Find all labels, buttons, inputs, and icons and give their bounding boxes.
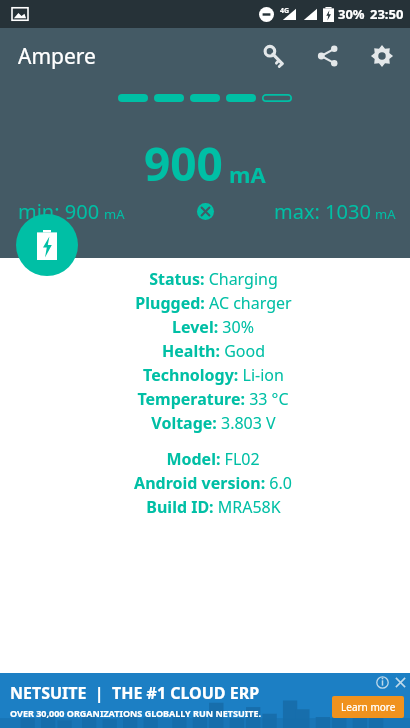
staticText: mA xyxy=(229,159,266,189)
button[interactable]: Temperature: 33 °C xyxy=(0,387,410,411)
staticText: 23:50 xyxy=(370,5,404,23)
button[interactable]: Voltage: 3.803 V xyxy=(0,411,410,435)
button[interactable]: NETSUITE | THE #1 CLOUD ERP xyxy=(0,673,410,728)
staticText: mA xyxy=(375,205,396,223)
button[interactable]: Level: 30% xyxy=(0,315,410,339)
button[interactable]: Close ad xyxy=(392,674,408,690)
staticText: Health: Good xyxy=(162,340,265,362)
staticText: Technology: Li-ion xyxy=(143,364,284,386)
button[interactable]: Status: Charging xyxy=(0,267,410,291)
button[interactable]: Ad information xyxy=(374,674,390,690)
staticText: Level: 30% xyxy=(172,316,254,338)
staticText: Build ID: MRA58K xyxy=(146,496,281,518)
button[interactable]: Model: FL02 xyxy=(0,447,410,471)
staticText: max: 1030 xyxy=(274,198,371,225)
button[interactable]: Health: Good xyxy=(0,339,410,363)
button[interactable]: Plugged: AC charger xyxy=(0,291,410,315)
button[interactable]: Share xyxy=(308,36,348,76)
staticText: Status: Charging xyxy=(149,268,278,290)
staticText: 4G xyxy=(280,6,290,16)
staticText: 900 xyxy=(144,132,223,195)
button[interactable]: Build ID: MRA58K xyxy=(0,495,410,519)
staticText: Plugged: AC charger xyxy=(135,292,292,314)
button[interactable]: Android version: 6.0 xyxy=(0,471,410,495)
button[interactable]: min: 900 xyxy=(18,198,125,225)
staticText: min: 900 xyxy=(18,198,100,225)
staticText: Android version: 6.0 xyxy=(134,472,292,494)
button[interactable]: Unlock pro version xyxy=(254,36,294,76)
staticText: mA xyxy=(104,205,125,223)
staticText: Temperature: 33 °C xyxy=(137,388,289,410)
staticText: NETSUITE | THE #1 CLOUD ERP xyxy=(10,682,260,704)
button[interactable]: Settings xyxy=(362,36,402,76)
button[interactable]: Learn more xyxy=(332,696,404,718)
button[interactable]: Battery charging details xyxy=(16,214,78,276)
staticText: Voltage: 3.803 V xyxy=(151,412,276,434)
button[interactable]: Reset min and max xyxy=(192,198,218,224)
staticText: Learn more xyxy=(341,700,396,714)
button[interactable]: max: 1030 xyxy=(274,198,396,225)
staticText: OVER 30,000 ORGANIZATIONS GLOBALLY RUN N… xyxy=(10,707,262,719)
button[interactable]: Technology: Li-ion xyxy=(0,363,410,387)
staticText: Ampere xyxy=(18,42,96,71)
staticText: 30% xyxy=(338,5,365,23)
staticText: Model: FL02 xyxy=(166,448,260,470)
